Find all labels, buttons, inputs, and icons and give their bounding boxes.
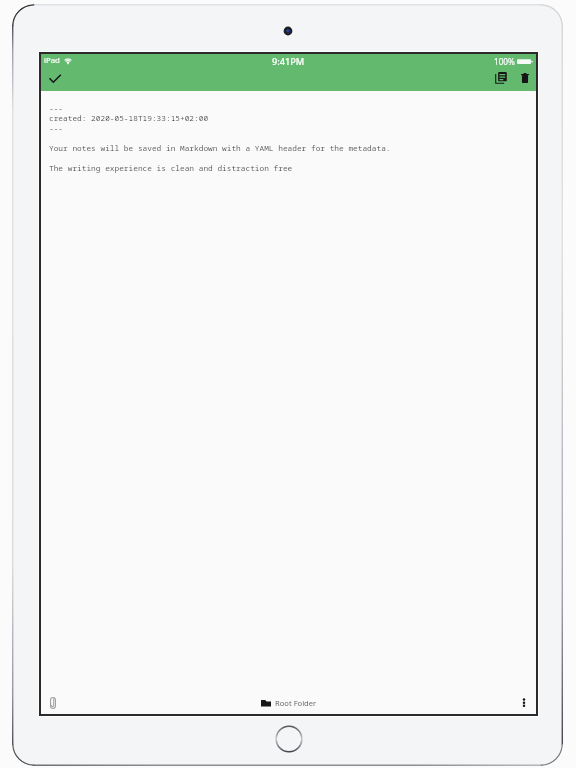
staticText: iPad	[44, 55, 60, 66]
staticText: Root Folder	[275, 698, 317, 708]
button[interactable]: Duplicate note	[488, 67, 514, 89]
button[interactable]: Attach file	[40, 692, 66, 714]
staticText: 9:41PM	[272, 55, 305, 68]
staticText: 100%	[494, 56, 515, 67]
staticText: --- created: 2020-05-18T19:33:15+02:00 -…	[49, 103, 391, 173]
button[interactable]: Delete note	[512, 67, 538, 89]
button[interactable]: Save note	[42, 68, 68, 90]
button[interactable]: More options	[511, 692, 537, 714]
button[interactable]: Root Folder	[257, 695, 321, 711]
